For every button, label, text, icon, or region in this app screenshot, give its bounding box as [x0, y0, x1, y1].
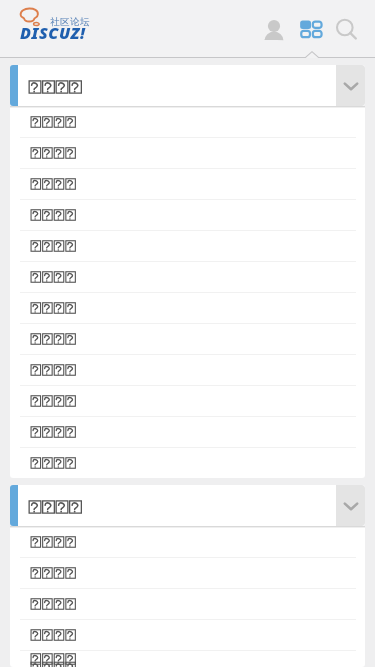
button[interactable]: Collapse [336, 65, 365, 106]
button[interactable]: Account [256, 9, 292, 49]
button[interactable] [10, 230, 365, 261]
button[interactable]: Discuz home [0, 0, 100, 45]
button[interactable] [10, 292, 365, 323]
button[interactable] [10, 588, 365, 619]
button[interactable] [10, 323, 365, 354]
button[interactable] [10, 199, 365, 230]
button[interactable]: Search [328, 9, 364, 49]
button[interactable]: Apps [292, 9, 328, 49]
button[interactable] [10, 619, 365, 650]
button[interactable] [10, 168, 365, 199]
staticText: DISCUZ! [20, 22, 86, 44]
button[interactable] [10, 557, 365, 588]
button[interactable]: Collapse [10, 65, 365, 106]
button[interactable] [10, 385, 365, 416]
button[interactable] [10, 106, 365, 137]
button[interactable] [10, 137, 365, 168]
button[interactable]: Collapse [10, 485, 365, 526]
button[interactable] [10, 354, 365, 385]
button[interactable] [10, 416, 365, 447]
staticText: 社区论坛 [50, 16, 90, 28]
button[interactable] [10, 261, 365, 292]
button[interactable]: Collapse [336, 485, 365, 526]
button[interactable] [10, 447, 365, 478]
button[interactable] [10, 526, 365, 557]
button[interactable] [10, 650, 365, 667]
